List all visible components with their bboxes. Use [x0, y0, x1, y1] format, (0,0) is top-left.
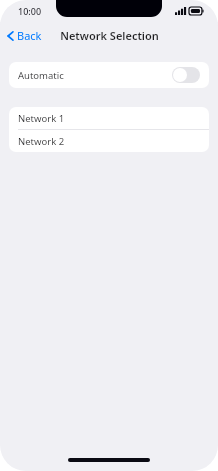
button[interactable]: Back	[0, 24, 50, 47]
staticText: Network 1	[18, 112, 65, 125]
staticText: Network Selection	[60, 28, 159, 43]
staticText: Back	[17, 28, 42, 43]
staticText: Automatic	[18, 69, 64, 82]
staticText: Network 2	[18, 135, 65, 148]
staticText: 10:00	[18, 5, 42, 17]
button[interactable]: Network 1	[9, 107, 209, 129]
button[interactable]: Automatic	[9, 62, 209, 88]
button[interactable]: Network 2	[9, 130, 209, 152]
button[interactable]: Automatic network selection toggle	[172, 67, 200, 83]
